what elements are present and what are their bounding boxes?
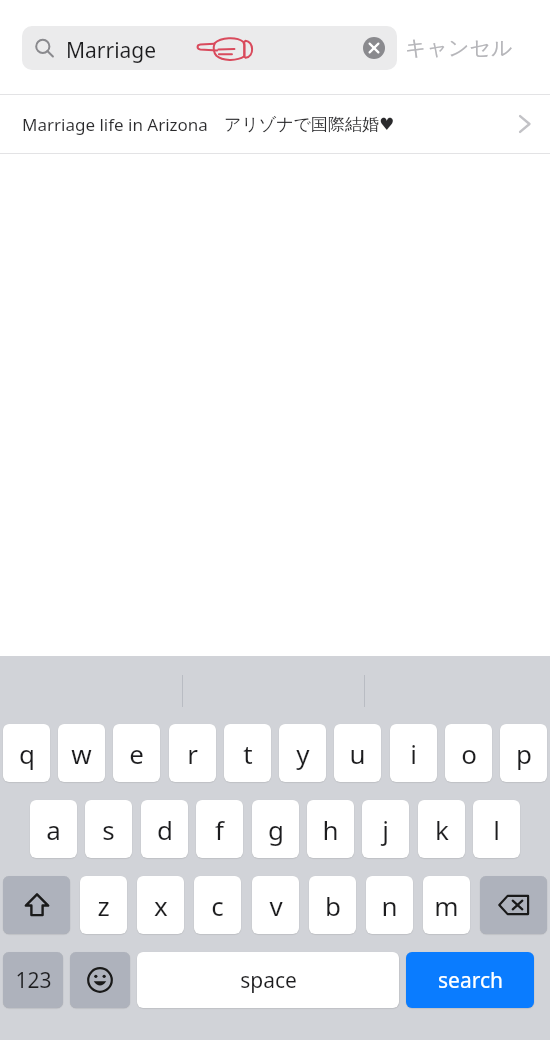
button[interactable]: j [362,800,409,858]
button[interactable]: space [137,952,399,1008]
button[interactable]: l [473,800,520,858]
staticText: u [349,736,366,771]
staticText: search [438,966,503,995]
button[interactable]: d [141,800,188,858]
staticText: v [269,888,283,923]
staticText: n [381,888,398,923]
button[interactable]: s [85,800,132,858]
staticText: 123 [15,966,52,995]
staticText: p [516,736,532,771]
staticText: y [296,736,310,771]
button[interactable]: i [390,724,437,782]
button[interactable]: e [113,724,160,782]
staticText: o [461,736,477,771]
staticText: m [434,888,459,923]
staticText: l [493,812,500,847]
button[interactable]: z [80,876,127,934]
button[interactable]: Shift [3,876,70,934]
button[interactable]: search [406,952,534,1008]
button[interactable]: b [309,876,356,934]
button[interactable]: a [30,800,77,858]
staticText: w [71,736,92,771]
button[interactable]: f [196,800,243,858]
staticText: e [129,736,144,771]
button[interactable]: Marriage [22,26,397,70]
button[interactable]: o [445,724,492,782]
staticText: a [46,812,61,847]
button[interactable]: m [423,876,470,934]
staticText: s [102,812,115,847]
button[interactable]: u [334,724,381,782]
staticText: f [215,812,224,847]
staticText: キャンセル [405,35,513,61]
staticText: d [157,812,173,847]
button[interactable]: Emoji [70,952,130,1008]
button[interactable]: r [169,724,216,782]
staticText: space [240,966,297,995]
staticText: z [97,888,110,923]
button[interactable]: k [418,800,465,858]
button[interactable]: t [224,724,271,782]
button[interactable]: x [137,876,184,934]
button[interactable]: w [58,724,105,782]
button[interactable]: c [194,876,241,934]
staticText: c [211,888,224,923]
button[interactable]: v [252,876,299,934]
staticText: t [243,736,253,771]
button[interactable]: Clear text [363,37,385,59]
staticText: Marriage life in Arizona [22,113,208,136]
staticText: q [19,736,35,771]
staticText: j [382,812,389,847]
button[interactable]: Backspace [480,876,547,934]
button[interactable]: h [307,800,354,858]
staticText: アリゾナで国際結婚♥ [224,114,395,135]
button[interactable]: 123 [3,952,63,1008]
staticText: Marriage [66,36,157,65]
staticText: g [268,812,284,847]
button[interactable]: y [279,724,326,782]
button[interactable]: g [252,800,299,858]
staticText: i [410,736,417,771]
button[interactable]: q [3,724,50,782]
staticText: r [187,736,198,771]
button[interactable]: p [500,724,547,782]
button[interactable]: n [366,876,413,934]
button[interactable]: キャンセル [405,26,513,70]
staticText: b [325,888,341,923]
staticText: h [322,812,339,847]
staticText: k [435,812,449,847]
staticText: x [154,888,168,923]
button[interactable]: Marriage life in Arizona [0,95,550,153]
